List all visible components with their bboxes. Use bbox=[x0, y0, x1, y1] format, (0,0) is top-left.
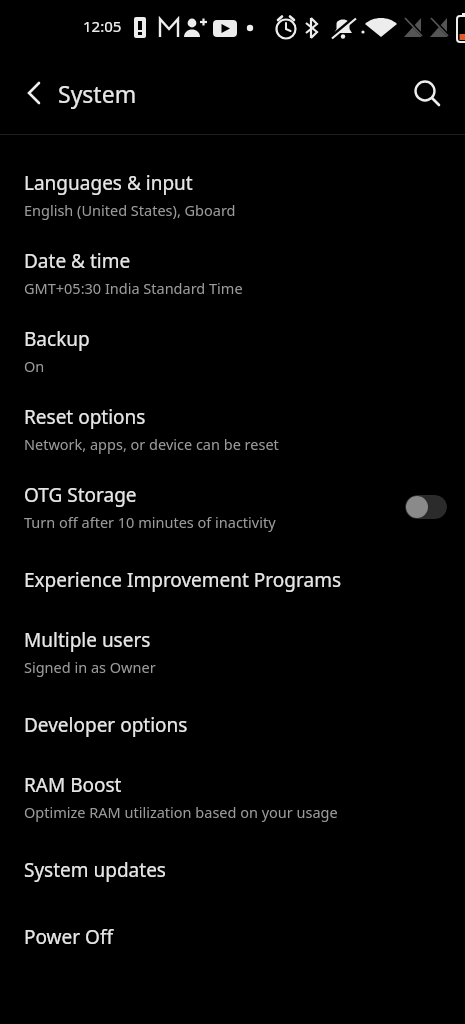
staticText: System updates bbox=[24, 857, 166, 883]
button[interactable]: Backup bbox=[0, 312, 465, 390]
staticText: English (United States), Gboard bbox=[24, 200, 236, 220]
staticText: On bbox=[24, 356, 45, 376]
staticText: System bbox=[58, 78, 137, 109]
staticText: RAM Boost bbox=[24, 772, 122, 798]
button[interactable]: Languages & input bbox=[0, 156, 465, 234]
staticText: Optimize RAM utilization based on your u… bbox=[24, 802, 338, 822]
staticText: Reset options bbox=[24, 404, 146, 430]
staticText: Backup bbox=[24, 326, 90, 352]
button[interactable]: System updates bbox=[0, 836, 465, 903]
button[interactable]: Reset options bbox=[0, 390, 465, 468]
button[interactable]: OTG Storage bbox=[0, 468, 465, 546]
staticText: Signed in as Owner bbox=[24, 657, 156, 677]
staticText: Network, apps, or device can be reset bbox=[24, 434, 279, 454]
button[interactable]: RAM Boost bbox=[0, 758, 465, 836]
staticText: 12:05 bbox=[83, 16, 122, 36]
button[interactable]: Date & time bbox=[0, 234, 465, 312]
staticText: Developer options bbox=[24, 712, 188, 738]
button[interactable]: Multiple users bbox=[0, 613, 465, 691]
button[interactable]: Search bbox=[405, 71, 449, 115]
staticText: Power Off bbox=[24, 924, 113, 950]
button[interactable]: Experience Improvement Programs bbox=[0, 546, 465, 613]
staticText: Date & time bbox=[24, 248, 131, 274]
button[interactable]: Developer options bbox=[0, 691, 465, 758]
staticText: OTG Storage bbox=[24, 482, 137, 508]
staticText: Experience Improvement Programs bbox=[24, 567, 341, 593]
button[interactable]: Back bbox=[12, 71, 56, 115]
button[interactable]: OTG Storage toggle bbox=[405, 495, 447, 519]
button[interactable]: Power Off bbox=[0, 903, 465, 970]
staticText: Languages & input bbox=[24, 170, 193, 196]
staticText: Multiple users bbox=[24, 627, 151, 653]
staticText: GMT+05:30 India Standard Time bbox=[24, 278, 243, 298]
staticText: Turn off after 10 minutes of inactivity bbox=[24, 512, 276, 532]
